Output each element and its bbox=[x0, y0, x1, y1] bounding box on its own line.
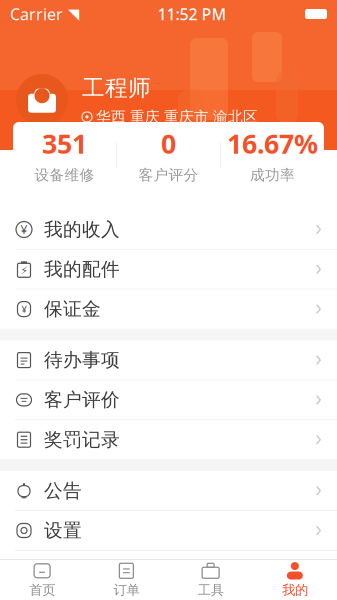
staticText: 0 bbox=[161, 126, 176, 161]
staticText: ◥ bbox=[68, 6, 79, 22]
button[interactable]: 设置 bbox=[0, 511, 337, 551]
staticText: 工具 bbox=[198, 582, 224, 598]
staticText: 我的收入 bbox=[44, 218, 120, 241]
button[interactable]: 工具 bbox=[168, 560, 253, 600]
staticText: 设置 bbox=[44, 519, 82, 542]
staticText: 华西 重庆 重庆市 渝北区 bbox=[96, 108, 258, 126]
staticText: 设备维修 bbox=[35, 166, 95, 184]
button[interactable]: ¥ bbox=[0, 290, 337, 329]
staticText: 客户评价 bbox=[44, 388, 120, 411]
button[interactable]: 我的 bbox=[253, 560, 337, 600]
staticText: 我的 bbox=[282, 582, 308, 598]
staticText: 公告 bbox=[44, 479, 82, 502]
button[interactable]: 公告 bbox=[0, 471, 337, 511]
staticText: ¥ bbox=[21, 303, 26, 315]
staticText: 奖罚记录 bbox=[44, 428, 120, 451]
button[interactable]: 首页 bbox=[0, 560, 84, 600]
staticText: 工程师 bbox=[82, 74, 151, 102]
staticText: 首页 bbox=[29, 582, 55, 598]
button[interactable]: ¥ bbox=[0, 210, 337, 250]
staticText: 待办事项 bbox=[44, 349, 120, 371]
button[interactable]: 客户评价 bbox=[0, 380, 337, 420]
button[interactable]: 订单 bbox=[84, 560, 168, 600]
staticText: ¥ bbox=[20, 221, 27, 237]
staticText: 我的配件 bbox=[44, 258, 120, 281]
staticText: 客户评分 bbox=[138, 166, 198, 184]
staticText: 订单 bbox=[113, 582, 139, 598]
staticText: ⚡︎ bbox=[20, 265, 27, 277]
button[interactable]: ⚡︎ bbox=[0, 250, 337, 290]
staticText: 16.67% bbox=[227, 126, 318, 161]
staticText: 351 bbox=[42, 126, 87, 161]
staticText: 11:52 PM bbox=[157, 3, 226, 25]
button[interactable]: 奖罚记录 bbox=[0, 420, 337, 459]
staticText: 成功率 bbox=[250, 166, 295, 184]
button[interactable]: 待办事项 bbox=[0, 341, 337, 380]
staticText: 保证金 bbox=[44, 298, 101, 320]
staticText: Carrier bbox=[10, 3, 63, 25]
